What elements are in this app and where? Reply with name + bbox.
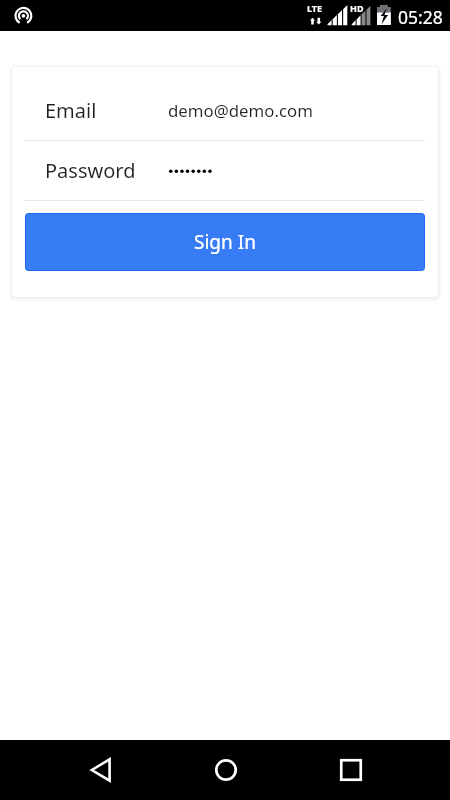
staticText: demo@demo.com [168,99,313,122]
staticText: 05:28 [398,5,443,29]
button[interactable]: Home [163,740,288,800]
staticText: Password [45,157,136,184]
staticText: HD [350,2,364,14]
button[interactable]: Recents [288,740,413,800]
staticText: Email [45,97,97,124]
button[interactable]: Email [12,80,438,141]
button[interactable]: Password [12,140,438,200]
button[interactable]: Back [38,740,163,800]
staticText: Sign In [194,229,256,255]
button[interactable]: Sign In [26,214,424,270]
staticText: LTE [307,2,323,14]
